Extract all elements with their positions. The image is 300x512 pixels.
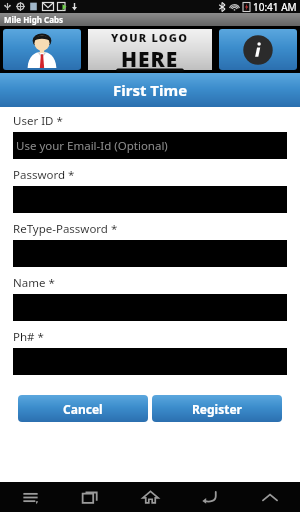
staticText: Cancel bbox=[63, 401, 103, 417]
button[interactable]: Back bbox=[180, 482, 240, 512]
staticText: 10:41 AM bbox=[253, 0, 297, 13]
staticText: Password * bbox=[13, 167, 75, 183]
staticText: First Time bbox=[113, 80, 188, 100]
button[interactable]: Cancel bbox=[18, 395, 148, 422]
button[interactable]: Recent apps bbox=[60, 482, 120, 512]
staticText: YOUR LOGO bbox=[111, 30, 189, 45]
staticText: Mile High Cabs bbox=[4, 14, 64, 25]
staticText: User ID * bbox=[13, 113, 63, 129]
button[interactable]: Information bbox=[219, 29, 297, 70]
button[interactable]: Use your Email-Id (Optional) bbox=[13, 132, 287, 159]
button[interactable]: Profile bbox=[3, 29, 81, 70]
button[interactable]: Hide bbox=[240, 482, 300, 512]
button[interactable]: Home bbox=[120, 482, 180, 512]
staticText: ReType-Password * bbox=[13, 221, 118, 237]
button[interactable]: Menu bbox=[0, 482, 60, 512]
staticText: Register bbox=[192, 401, 242, 417]
staticText: Name * bbox=[13, 275, 55, 291]
button[interactable]: First Time bbox=[0, 73, 300, 107]
staticText: Use your Email-Id (Optional) bbox=[16, 138, 168, 154]
staticText: HERE bbox=[121, 45, 179, 70]
button[interactable]: Register bbox=[152, 395, 282, 422]
button[interactable]: Your logo here bbox=[88, 29, 212, 70]
staticText: Ph# * bbox=[13, 329, 44, 345]
